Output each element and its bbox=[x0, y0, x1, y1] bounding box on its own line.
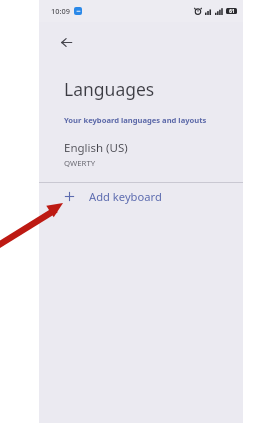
staticText: English (US) bbox=[64, 140, 128, 156]
button[interactable]: Add keyboard bbox=[39, 183, 243, 209]
staticText: Your keyboard languages and layouts bbox=[64, 115, 207, 125]
button[interactable]: English (US) bbox=[39, 138, 243, 175]
button[interactable]: Back bbox=[51, 27, 81, 57]
staticText: Add keyboard bbox=[89, 189, 162, 204]
staticText: Languages bbox=[64, 77, 155, 101]
staticText: QWERTY bbox=[64, 158, 96, 169]
staticText: 10:09 bbox=[51, 6, 70, 16]
staticText: 61 bbox=[229, 8, 235, 14]
